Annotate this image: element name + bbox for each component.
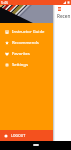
staticText: Recommends [12,40,39,46]
staticText: 5:46 [1,0,8,5]
button[interactable]: LOGOUT [0,130,53,141]
staticText: Settings [12,62,28,68]
button[interactable]: Favorites [0,48,53,59]
staticText: Recent [57,13,71,19]
button[interactable]: Open navigation drawer [56,5,63,12]
staticText: LOGOUT [11,133,26,138]
button[interactable]: Settings [0,59,53,70]
staticText: Favorites [12,51,30,57]
button[interactable]: Recommends [0,37,53,48]
staticText: Instructor Guide [12,29,45,35]
button[interactable]: Instructor Guide [0,26,53,37]
